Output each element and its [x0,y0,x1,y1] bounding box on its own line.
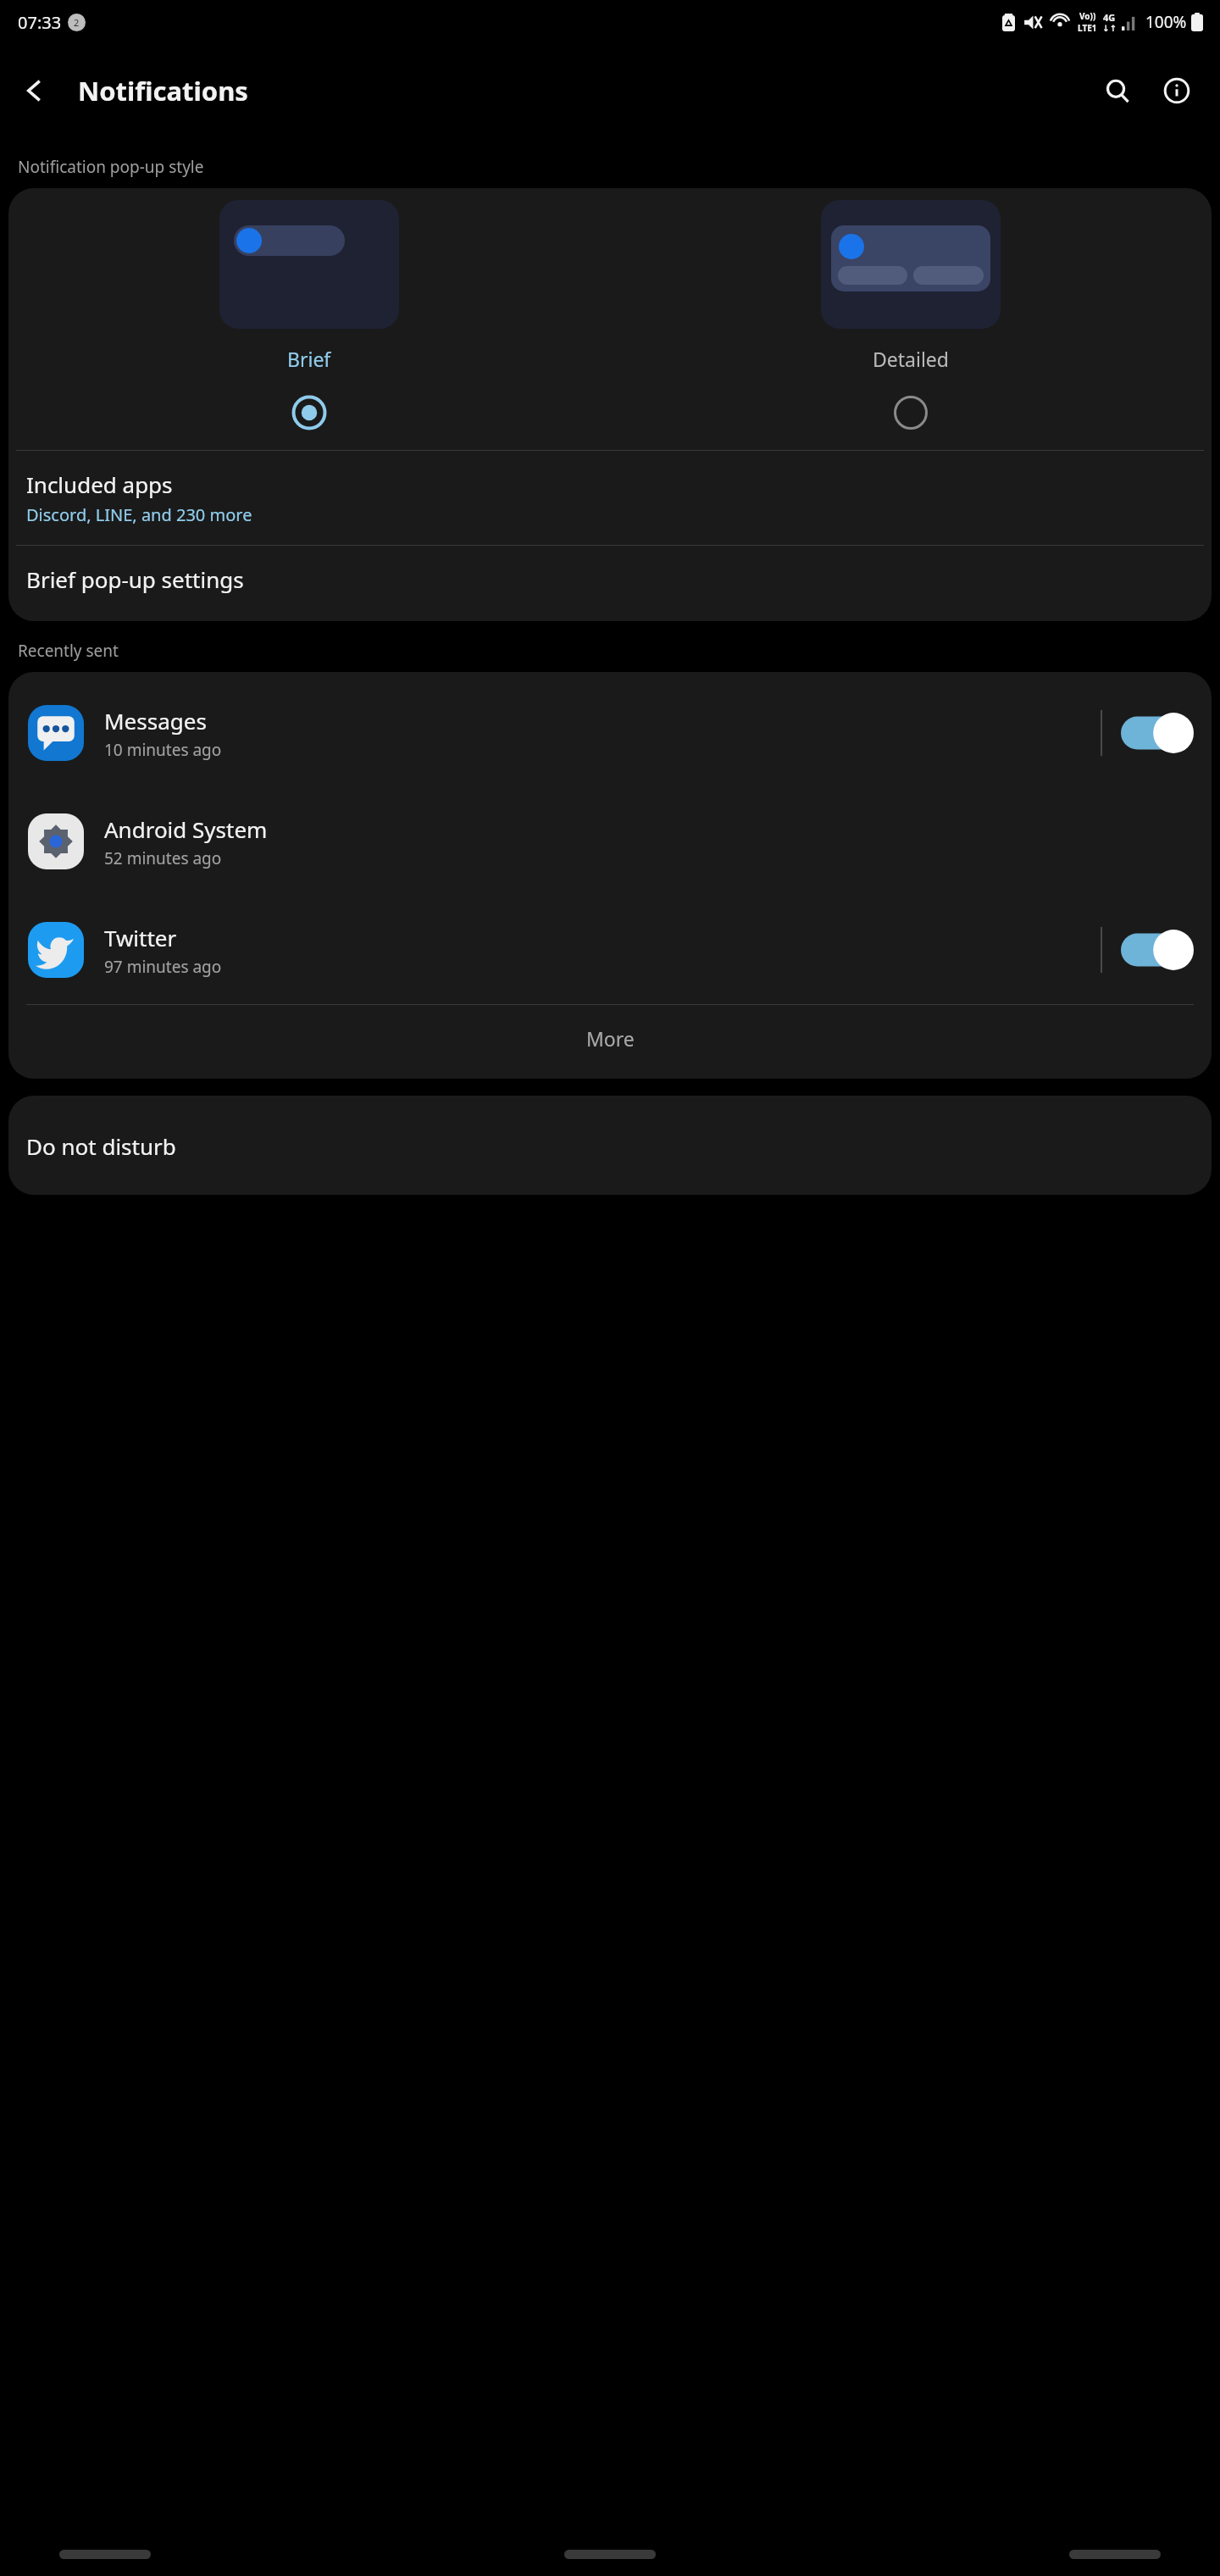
staticText: Notifications [78,73,248,108]
button[interactable]: Twitter [8,896,1212,1004]
button[interactable]: Toggle Twitter [1121,928,1194,972]
staticText: Discord, LINE, and 230 more [26,503,252,526]
button[interactable]: Information [1149,63,1205,119]
button[interactable]: Toggle Messages [1121,711,1194,755]
button[interactable]: Included apps [8,451,1212,545]
staticText: 10 minutes ago [104,739,222,761]
staticText: Notification pop-up style [18,156,204,178]
staticText: Brief [287,346,331,372]
staticText: LTE1 [1078,22,1097,34]
staticText: 4G [1103,11,1116,24]
button[interactable]: More [8,1005,1212,1072]
staticText: Twitter [104,923,177,952]
button[interactable]: Navigation button [59,2550,151,2559]
button[interactable]: Brief [8,200,610,431]
staticText: 97 minutes ago [104,956,222,978]
staticText: More [586,1025,635,1052]
staticText: ↓↑ [1102,24,1117,34]
staticText: Brief pop-up settings [26,564,244,594]
staticText: Detailed [873,346,949,372]
button[interactable]: Navigation button [1069,2550,1161,2559]
staticText: Vo)) [1079,10,1096,22]
staticText: Recently sent [18,640,119,662]
staticText: Included apps [26,469,173,499]
button[interactable]: Detailed [610,200,1212,431]
staticText: Do not disturb [26,1131,176,1161]
staticText: Messages [104,706,207,736]
button[interactable]: Android System [8,787,1212,896]
button[interactable]: Brief pop-up settings [8,546,1212,613]
staticText: 2 [74,16,80,29]
staticText: Android System [104,814,268,844]
button[interactable]: Navigation button [564,2550,656,2559]
staticText: 100% [1145,11,1187,33]
staticText: 07:33 [18,11,62,34]
button[interactable]: Search [1090,63,1145,119]
button[interactable]: Back [5,61,64,120]
button[interactable]: Do not disturb [8,1096,1212,1195]
button[interactable]: Messages [8,679,1212,787]
staticText: 52 minutes ago [104,847,222,869]
